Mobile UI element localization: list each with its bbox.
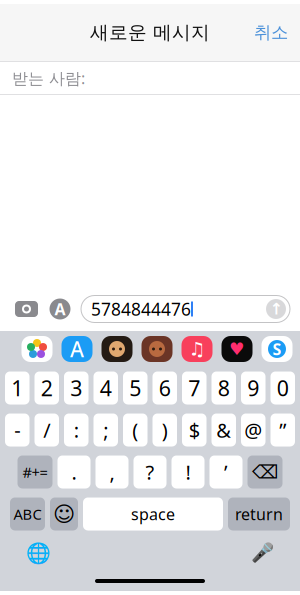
button[interactable]: . (57, 455, 90, 488)
staticText: ’ (224, 459, 228, 485)
staticText: 취소 (254, 22, 288, 43)
button[interactable]: Camera (14, 298, 39, 320)
button[interactable]: Music (181, 336, 212, 362)
button[interactable]: 8 (211, 371, 236, 404)
button[interactable]: ! (171, 455, 204, 488)
button[interactable]: $ (182, 413, 206, 446)
staticText: 받는 사람: (12, 67, 85, 89)
staticText: space (131, 503, 175, 525)
staticText: , (109, 459, 114, 485)
staticText: @ (244, 417, 262, 443)
staticText: ” (279, 417, 286, 443)
button[interactable]: Emoji (50, 497, 78, 530)
button[interactable]: / (34, 413, 59, 446)
button[interactable]: ( (123, 413, 147, 446)
staticText: S (272, 338, 281, 360)
staticText: 🎤 (251, 542, 274, 564)
staticText: A (54, 298, 65, 320)
button[interactable]: 2 (34, 371, 59, 404)
staticText: ↑ (269, 300, 282, 318)
staticText: 4 (100, 374, 112, 402)
button[interactable]: ” (270, 413, 295, 446)
staticText: 9 (247, 374, 259, 402)
staticText: 5784844476 (91, 297, 191, 320)
button[interactable]: ; (93, 413, 118, 446)
staticText: & (216, 417, 231, 443)
staticText: ABC (13, 504, 41, 524)
staticText: ♫ (188, 338, 205, 360)
button[interactable]: ) (152, 413, 177, 446)
staticText: return (235, 503, 283, 525)
staticText: : (74, 417, 79, 443)
button[interactable]: Dictation (251, 536, 300, 570)
button[interactable]: return (228, 497, 290, 530)
staticText: . (71, 459, 76, 485)
button[interactable]: ’ (209, 455, 242, 488)
button[interactable]: & (211, 413, 236, 446)
button[interactable]: @ (241, 413, 265, 446)
button[interactable]: Apps (49, 298, 71, 320)
staticText: 3 (70, 374, 82, 402)
button[interactable]: #+= (17, 455, 52, 488)
button[interactable]: Shazam (261, 336, 292, 362)
button[interactable]: 취소 (254, 14, 300, 51)
staticText: / (43, 417, 50, 443)
button[interactable]: : (64, 413, 88, 446)
button[interactable]: ABC (10, 497, 45, 530)
staticText: ♥ (229, 339, 245, 359)
button[interactable]: 3 (64, 371, 88, 404)
button[interactable]: 4 (93, 371, 118, 404)
staticText: A (70, 335, 84, 363)
button[interactable]: , (95, 455, 128, 488)
button[interactable]: 0 (270, 371, 295, 404)
staticText: ⌫ (252, 461, 278, 483)
button[interactable]: 6 (152, 371, 177, 404)
button[interactable]: Next keyboard (0, 536, 51, 570)
button[interactable]: Memoji (141, 336, 172, 362)
staticText: 7 (188, 374, 200, 402)
staticText: 🌐 (26, 542, 51, 564)
button[interactable]: 7 (182, 371, 206, 404)
staticText: ☺ (53, 502, 75, 526)
button[interactable]: 5 (123, 371, 147, 404)
staticText: 2 (41, 374, 53, 402)
staticText: #+= (22, 462, 47, 482)
button[interactable]: Photos (21, 336, 52, 362)
button[interactable]: App Store (61, 336, 92, 362)
staticText: ; (103, 417, 108, 443)
button[interactable]: ? (133, 455, 166, 488)
staticText: 0 (277, 374, 289, 402)
staticText: - (14, 417, 20, 443)
staticText: ) (162, 417, 168, 443)
button[interactable]: 1 (5, 371, 29, 404)
staticText: ! (185, 459, 190, 485)
button[interactable]: - (5, 413, 29, 446)
staticText: 새로운 메시지 (90, 21, 210, 44)
staticText: 5 (129, 374, 141, 402)
staticText: ? (145, 459, 154, 485)
staticText: 8 (218, 374, 230, 402)
button[interactable]: Memoji (101, 336, 132, 362)
button[interactable]: Delete (247, 455, 282, 488)
button[interactable]: Fitness (221, 336, 252, 362)
staticText: 6 (159, 374, 171, 402)
staticText: ( (132, 417, 138, 443)
staticText: $ (189, 417, 200, 443)
staticText: 1 (11, 374, 23, 402)
button[interactable]: 9 (241, 371, 265, 404)
button[interactable]: space (83, 497, 223, 530)
